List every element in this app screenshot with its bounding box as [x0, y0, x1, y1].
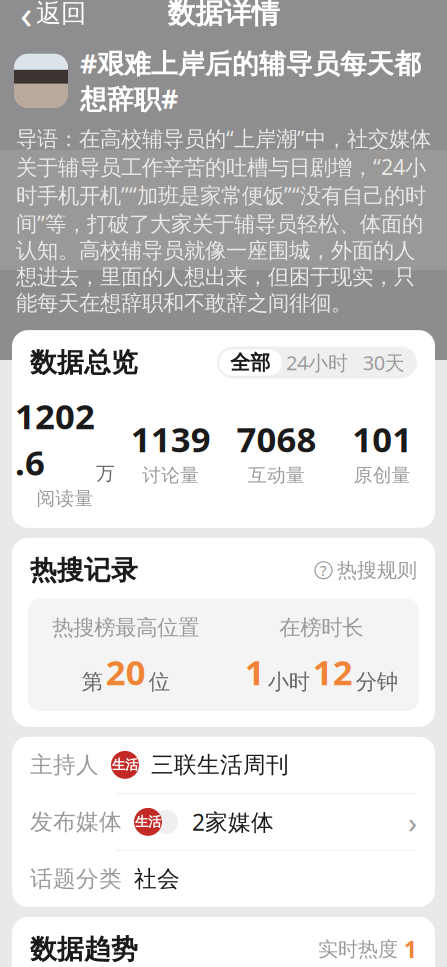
- staticText: 数据总览: [30, 346, 138, 379]
- staticText: 热搜记录: [30, 554, 138, 587]
- staticText: #艰难上岸后的辅导员每天都想辞职#: [80, 45, 421, 116]
- staticText: 三联生活周刊: [151, 751, 289, 779]
- staticText: 20: [106, 649, 146, 695]
- staticText: 热搜规则: [337, 558, 417, 583]
- staticText: 2家媒体: [192, 807, 274, 837]
- staticText: 数据趋势: [30, 933, 138, 966]
- button[interactable]: 24小时: [284, 346, 350, 378]
- staticText: ›: [408, 802, 417, 841]
- staticText: 小时: [268, 669, 310, 695]
- staticText: 社会: [134, 865, 180, 893]
- button[interactable]: 发布媒体: [12, 794, 435, 850]
- button[interactable]: ?: [315, 554, 417, 587]
- staticText: 1202.6: [15, 393, 95, 485]
- staticText: 原创量: [354, 464, 411, 487]
- staticText: ?: [320, 560, 327, 580]
- staticText: 生活: [135, 814, 161, 830]
- button[interactable]: 全部: [217, 346, 284, 378]
- button[interactable]: ‹: [8, 0, 98, 46]
- button[interactable]: 主持人: [12, 737, 435, 793]
- staticText: 30天: [363, 349, 405, 376]
- staticText: 12: [313, 649, 353, 695]
- staticText: 第: [82, 669, 103, 695]
- staticText: 主持人: [30, 751, 99, 779]
- staticText: 1139: [131, 416, 211, 462]
- staticText: 阅读量: [36, 487, 93, 510]
- staticText: 生活: [112, 757, 138, 773]
- staticText: 热搜榜最高位置: [52, 615, 199, 641]
- staticText: 话题分类: [30, 865, 122, 893]
- staticText: 讨论量: [142, 464, 199, 487]
- staticText: 发布媒体: [30, 808, 122, 836]
- staticText: 1: [404, 934, 417, 964]
- staticText: 导语：在高校辅导员的“上岸潮”中，社交媒体关于辅导员工作辛苦的吐槽与日剧增，“2…: [16, 124, 431, 316]
- staticText: 7068: [236, 416, 316, 462]
- staticText: 实时热度: [318, 937, 398, 962]
- staticText: 返回: [36, 0, 86, 29]
- staticText: 万: [96, 462, 115, 485]
- staticText: ‹: [20, 0, 32, 40]
- staticText: 数据详情: [167, 0, 279, 31]
- staticText: 24小时: [286, 349, 348, 376]
- staticText: 1: [245, 649, 265, 695]
- staticText: 互动量: [248, 464, 305, 487]
- button[interactable]: 30天: [350, 346, 417, 378]
- staticText: 分钟: [356, 669, 398, 695]
- staticText: 在榜时长: [279, 615, 363, 641]
- staticText: 位: [149, 669, 170, 695]
- staticText: 101: [352, 416, 412, 462]
- staticText: 全部: [230, 350, 270, 375]
